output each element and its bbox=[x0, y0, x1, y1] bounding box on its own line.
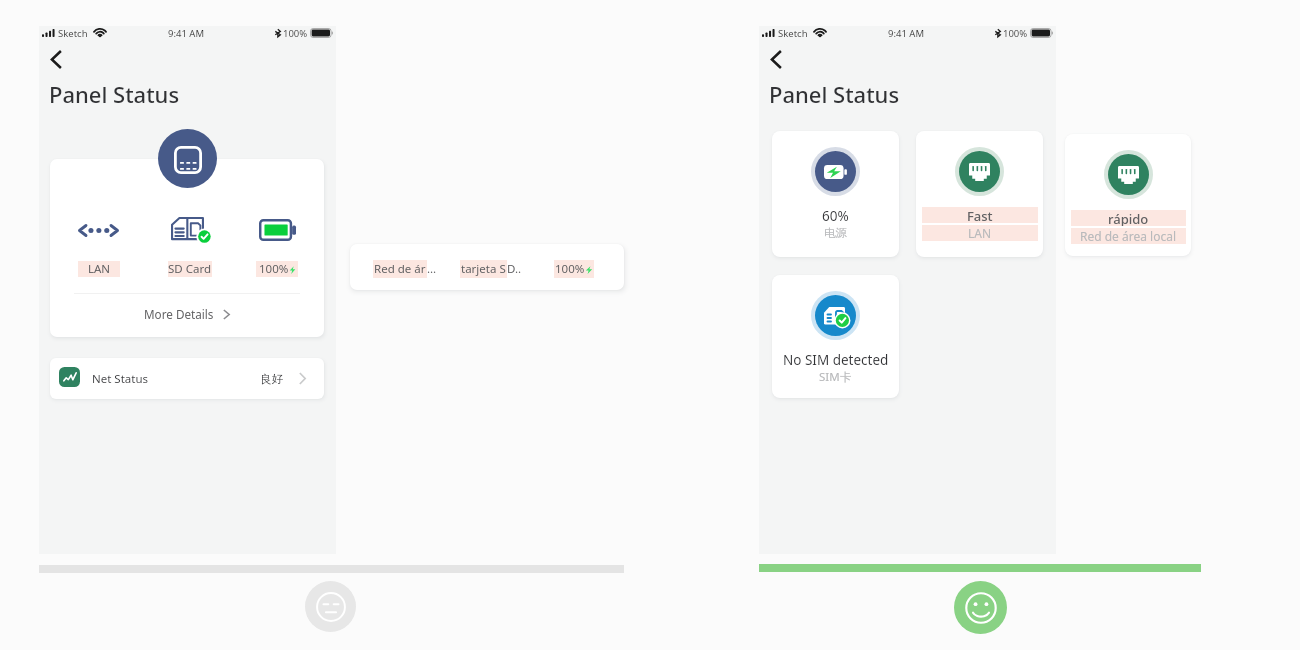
button[interactable]: LAN bbox=[50, 159, 324, 337]
staticText: 100% bbox=[555, 261, 585, 277]
staticText: 良好 bbox=[260, 372, 283, 386]
staticText: Red de ár bbox=[374, 261, 426, 277]
staticText: tarjeta S bbox=[461, 261, 506, 277]
staticText: Panel Status bbox=[49, 79, 180, 109]
staticText: 100% bbox=[259, 261, 289, 277]
button[interactable]: More Details bbox=[50, 294, 324, 337]
staticText: SD Card bbox=[168, 261, 212, 277]
button[interactable]: No SIM detected bbox=[772, 275, 899, 398]
button[interactable]: rápido bbox=[1065, 134, 1191, 256]
staticText: 100% bbox=[283, 27, 308, 40]
button[interactable]: Red de ár bbox=[350, 244, 624, 290]
staticText: Red de área local bbox=[1080, 228, 1177, 244]
button[interactable]: Back bbox=[765, 48, 787, 70]
staticText: 9:41 AM bbox=[168, 27, 205, 40]
staticText: 100% bbox=[1003, 27, 1028, 40]
staticText: 60% bbox=[822, 207, 849, 223]
staticText: More Details bbox=[144, 306, 214, 322]
staticText: No SIM detected bbox=[783, 351, 889, 367]
button[interactable]: 60% bbox=[772, 131, 899, 257]
staticText: 9:41 AM bbox=[888, 27, 925, 40]
staticText: Fast bbox=[967, 207, 993, 223]
staticText: Net Status bbox=[92, 371, 149, 387]
button[interactable]: Panel bbox=[158, 129, 217, 188]
staticText: Sketch bbox=[778, 27, 808, 40]
button[interactable]: Fast bbox=[916, 131, 1043, 257]
staticText: LAN bbox=[88, 261, 111, 277]
staticText: D.. bbox=[507, 261, 522, 277]
button[interactable]: Net Status bbox=[50, 358, 324, 399]
staticText: Panel Status bbox=[769, 79, 900, 109]
button[interactable]: Neutral feedback bbox=[305, 581, 356, 632]
staticText: rápido bbox=[1108, 210, 1149, 226]
staticText: 电源 bbox=[824, 226, 847, 240]
staticText: LAN bbox=[968, 225, 992, 241]
staticText: … bbox=[427, 261, 437, 277]
staticText: SIM卡 bbox=[819, 369, 852, 385]
staticText: Sketch bbox=[58, 27, 88, 40]
button[interactable]: Back bbox=[45, 48, 67, 70]
button[interactable]: Happy feedback bbox=[954, 581, 1007, 634]
